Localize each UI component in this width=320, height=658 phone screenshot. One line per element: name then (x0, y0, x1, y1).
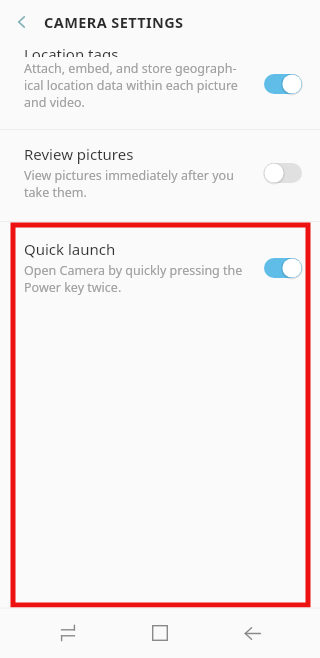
button[interactable]: On (264, 74, 302, 94)
button[interactable]: Back (0, 0, 44, 44)
button[interactable]: Home (136, 609, 184, 657)
button[interactable]: Recents (44, 609, 92, 657)
staticText: Location tags (24, 44, 119, 57)
button[interactable]: Off (264, 163, 302, 183)
button[interactable]: Quick launch (0, 222, 320, 316)
staticText: Review pictures (24, 144, 134, 164)
staticText: Open Camera by quickly pressing the Powe… (24, 262, 243, 296)
button[interactable]: Review pictures (0, 130, 320, 221)
button[interactable]: Location tags (0, 44, 320, 129)
staticText: CAMERA SETTINGS (44, 12, 184, 32)
button[interactable]: On (264, 258, 302, 278)
button[interactable]: Back (228, 609, 276, 657)
staticText: View pictures immediately after you take… (24, 167, 234, 201)
staticText: Quick launch (24, 239, 116, 259)
staticText: Attach, embed, and store geograph- ical … (24, 60, 238, 111)
